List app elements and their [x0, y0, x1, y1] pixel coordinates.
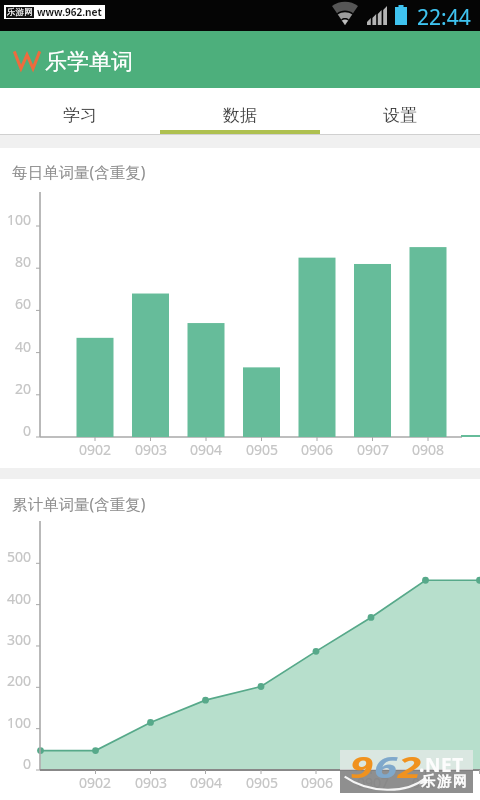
- staticText: 22:44: [417, 3, 471, 32]
- staticText: 80: [15, 252, 32, 271]
- staticText: 9: [350, 748, 374, 786]
- staticText: 0905: [246, 440, 279, 459]
- staticText: 0: [23, 421, 32, 440]
- staticText: 200: [7, 671, 32, 690]
- staticText: 2: [398, 748, 422, 786]
- button[interactable]: 学习: [0, 88, 160, 134]
- staticText: 100: [7, 713, 32, 732]
- staticText: 400: [7, 589, 32, 608]
- other: Mobile signal: [367, 6, 387, 25]
- staticText: 0908: [412, 773, 445, 792]
- staticText: 20: [15, 379, 32, 398]
- staticText: 0902: [79, 773, 112, 792]
- button[interactable]: 设置: [320, 88, 480, 134]
- staticText: 6: [374, 748, 398, 786]
- staticText: 乐学单词: [45, 48, 133, 76]
- staticText: 0904: [190, 440, 223, 459]
- staticText: 学习: [63, 105, 97, 126]
- staticText: 每日单词量(含重复): [12, 161, 146, 182]
- staticText: 500: [7, 547, 32, 566]
- staticText: 0907: [357, 440, 390, 459]
- staticText: 0903: [135, 440, 168, 459]
- staticText: 0907: [357, 773, 390, 792]
- staticText: 40: [15, 337, 32, 356]
- staticText: 设置: [383, 105, 417, 126]
- staticText: www.962.net: [37, 5, 102, 19]
- staticText: 300: [7, 630, 32, 649]
- staticText: 0902: [79, 440, 112, 459]
- staticText: 数据: [223, 105, 257, 126]
- staticText: 60: [15, 294, 32, 313]
- staticText: 0906: [301, 773, 334, 792]
- staticText: 0904: [190, 773, 223, 792]
- staticText: 0905: [246, 773, 279, 792]
- staticText: .NET: [419, 752, 464, 778]
- staticText: 100: [7, 210, 32, 229]
- staticText: 0: [23, 754, 32, 773]
- staticText: 0906: [301, 440, 334, 459]
- other: Battery: [395, 5, 407, 25]
- staticText: 乐游网: [7, 7, 33, 18]
- staticText: 0908: [412, 440, 445, 459]
- button[interactable]: 数据: [160, 88, 320, 134]
- staticText: 乐游网: [420, 773, 468, 791]
- staticText: 0903: [135, 773, 168, 792]
- other: Wi-Fi signal: [332, 6, 358, 25]
- staticText: 累计单词量(含重复): [12, 493, 146, 514]
